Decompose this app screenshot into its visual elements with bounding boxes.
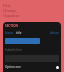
staticText: Subtitle line (5, 48, 22, 52)
staticText: Organize (3, 13, 20, 18)
staticText: SECTION (5, 24, 18, 28)
button[interactable]: Option one (5, 65, 59, 69)
staticText: Action (50, 31, 59, 35)
button[interactable] (5, 38, 40, 44)
staticText: Change, (3, 8, 18, 13)
staticText: Insert (5, 31, 14, 35)
staticText: Option one (5, 65, 21, 69)
staticText: title (16, 31, 22, 35)
staticText: Edit, (3, 3, 12, 8)
